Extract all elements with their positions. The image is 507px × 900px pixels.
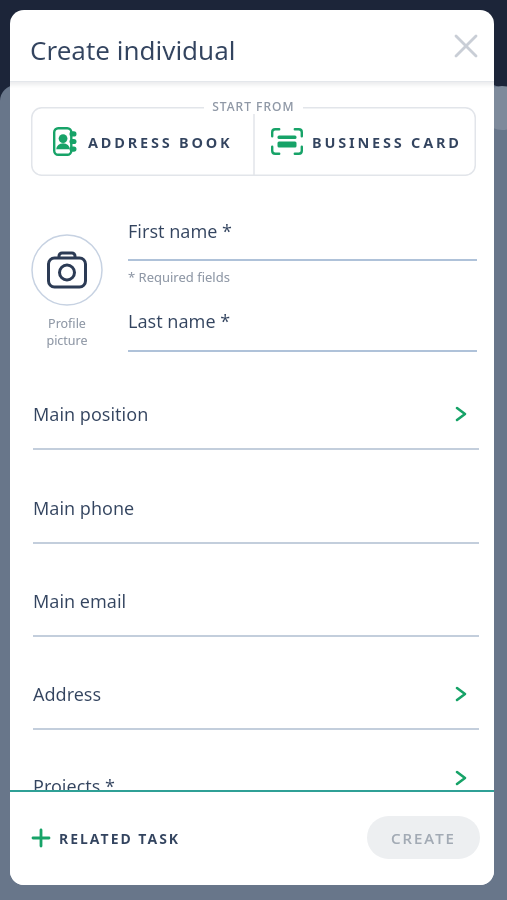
staticText: CREATE — [391, 828, 456, 848]
staticText: Create individual — [30, 32, 236, 67]
staticText: Last name * — [128, 309, 231, 334]
staticText: Profile picture — [37, 315, 97, 349]
button[interactable] — [446, 26, 486, 66]
button[interactable]: CREATE — [367, 816, 480, 859]
button[interactable]: RELATED TASK — [33, 818, 155, 858]
staticText: Main email — [33, 589, 127, 614]
staticText: ADDRESS BOOK — [88, 132, 233, 152]
button[interactable]: BUSINESS CARD — [254, 107, 476, 176]
staticText: START FROM — [204, 98, 303, 114]
button[interactable] — [31, 234, 103, 306]
button[interactable]: Address — [33, 670, 479, 718]
staticText: Address — [33, 682, 102, 707]
button[interactable]: Projects * — [33, 762, 479, 810]
button[interactable]: Main position — [33, 390, 479, 438]
staticText: Projects * — [33, 774, 116, 799]
button[interactable]: Main email — [33, 577, 479, 625]
staticText: RELATED TASK — [59, 829, 181, 848]
staticText: * Required fields — [128, 268, 230, 286]
staticText: Main phone — [33, 496, 135, 521]
staticText: Main position — [33, 402, 149, 427]
button[interactable]: ADDRESS BOOK — [31, 107, 254, 176]
staticText: BUSINESS CARD — [312, 132, 462, 152]
staticText: First name * — [128, 219, 233, 244]
button[interactable]: Main phone — [33, 484, 479, 532]
